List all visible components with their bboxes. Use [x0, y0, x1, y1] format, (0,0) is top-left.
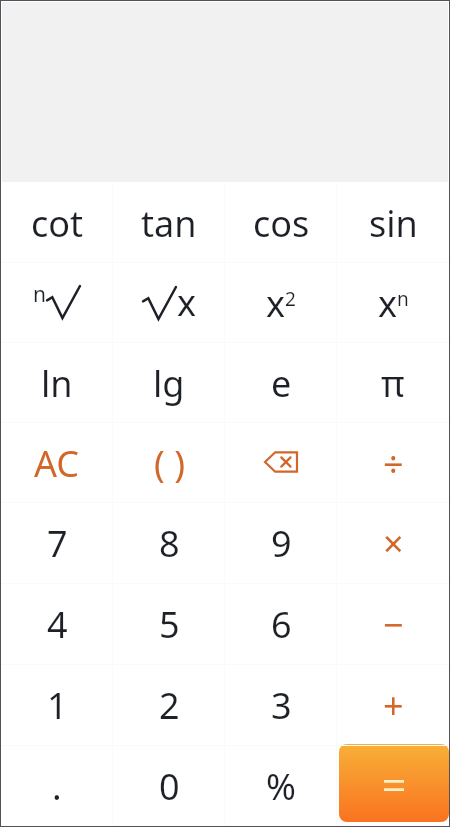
button[interactable]: +: [337, 664, 449, 745]
button[interactable]: cos: [225, 182, 337, 262]
staticText: AC: [34, 439, 80, 488]
staticText: .: [52, 762, 62, 811]
button[interactable]: 8: [113, 502, 225, 583]
staticText: 0: [159, 762, 180, 811]
staticText: ln: [41, 359, 73, 408]
staticText: n: [33, 280, 46, 309]
button[interactable]: e: [225, 342, 337, 422]
staticText: π: [381, 359, 405, 408]
button[interactable]: 9: [225, 502, 337, 583]
staticText: x2: [266, 279, 296, 328]
staticText: cot: [31, 199, 84, 248]
button[interactable]: π: [337, 342, 449, 422]
staticText: 9: [271, 519, 292, 568]
button[interactable]: 6: [225, 583, 337, 664]
staticText: 1: [47, 681, 68, 730]
button[interactable]: ×: [337, 502, 449, 583]
staticText: lg: [153, 359, 185, 408]
button[interactable]: lg: [113, 342, 225, 422]
button[interactable]: .: [1, 745, 113, 826]
staticText: cos: [253, 199, 310, 248]
staticText: 4: [47, 600, 68, 649]
button[interactable]: cot: [1, 182, 113, 262]
button[interactable]: tan: [113, 182, 225, 262]
button[interactable]: 0: [113, 745, 225, 826]
button[interactable]: 2: [113, 664, 225, 745]
button[interactable]: 3: [225, 664, 337, 745]
button[interactable]: Delete: [225, 422, 337, 502]
button[interactable]: sin: [337, 182, 449, 262]
button[interactable]: 4: [1, 583, 113, 664]
staticText: %: [266, 762, 296, 811]
staticText: 6: [271, 600, 292, 649]
button[interactable]: nth root: [1, 262, 113, 342]
staticText: ( ): [154, 439, 185, 488]
staticText: −: [383, 600, 404, 649]
staticText: x: [177, 278, 197, 327]
button[interactable]: Equals: [339, 744, 449, 822]
button[interactable]: −: [337, 583, 449, 664]
staticText: ×: [383, 519, 404, 568]
staticText: 5: [159, 600, 180, 649]
staticText: 2: [159, 681, 180, 730]
button[interactable]: ( ): [113, 422, 225, 502]
button[interactable]: 7: [1, 502, 113, 583]
button[interactable]: %: [225, 745, 337, 826]
button[interactable]: ÷: [337, 422, 449, 502]
button[interactable]: x squared: [225, 262, 337, 342]
button[interactable]: ln: [1, 342, 113, 422]
staticText: tan: [141, 199, 197, 248]
button[interactable]: Square root: [113, 262, 225, 342]
button[interactable]: x to the power n: [337, 262, 449, 342]
staticText: ÷: [383, 439, 404, 488]
button[interactable]: 1: [1, 664, 113, 745]
staticText: 3: [271, 681, 292, 730]
staticText: sin: [369, 199, 418, 248]
button[interactable]: AC: [1, 422, 113, 502]
staticText: e: [271, 359, 292, 408]
staticText: xn: [378, 279, 409, 328]
staticText: +: [383, 681, 404, 730]
staticText: 7: [47, 519, 68, 568]
staticText: 8: [159, 519, 180, 568]
button[interactable]: 5: [113, 583, 225, 664]
